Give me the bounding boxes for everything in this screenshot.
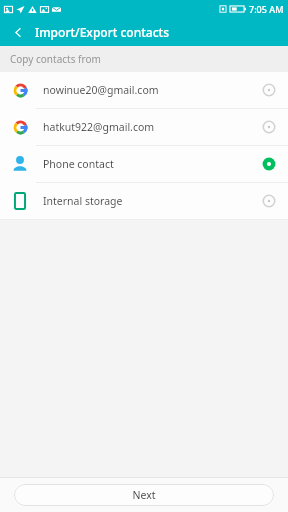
staticText: Import/Export contacts — [35, 24, 169, 40]
button[interactable]: nowinue20@gmail.com — [0, 72, 288, 108]
button[interactable]: hatkut922@gmail.com — [0, 109, 288, 145]
staticText: Next — [132, 488, 156, 502]
staticText: hatkut922@gmail.com — [43, 120, 262, 134]
button[interactable]: Back — [6, 20, 30, 44]
button[interactable]: Phone contact — [0, 146, 288, 182]
staticText: Phone contact — [43, 157, 262, 171]
staticText: Copy contacts from — [10, 52, 101, 66]
button[interactable]: Internal storage — [0, 183, 288, 219]
button[interactable]: Next — [14, 484, 274, 506]
staticText: 7:05 AM — [249, 3, 284, 15]
staticText: Internal storage — [43, 194, 262, 208]
staticText: nowinue20@gmail.com — [43, 83, 262, 97]
